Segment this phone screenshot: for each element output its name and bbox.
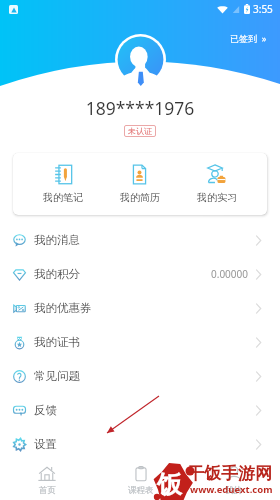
staticText: 我的积分 <box>34 267 80 281</box>
staticText: 189****1976 <box>0 96 280 120</box>
staticText: 课程表 <box>128 485 154 496</box>
button[interactable]: 反馈 <box>0 393 280 427</box>
button[interactable]: 我的消息 <box>0 223 280 257</box>
staticText: 饭 <box>157 469 182 500</box>
button[interactable]: 我的优惠券 <box>0 291 280 325</box>
button[interactable]: 常见问题 <box>0 359 280 393</box>
button[interactable]: 我的实习 <box>178 153 255 215</box>
button[interactable]: 未认证 <box>124 125 156 137</box>
staticText: 3:55 <box>253 2 273 16</box>
staticText: 常见问题 <box>34 369 80 383</box>
staticText: 未认证 <box>128 126 152 136</box>
button[interactable]: 我的证书 <box>0 325 280 359</box>
staticText: www.eduext.com <box>190 483 273 496</box>
staticText: 我的证书 <box>34 335 80 349</box>
staticText: 干饭手游网 <box>187 463 272 484</box>
button[interactable]: 已签到 » <box>228 30 269 46</box>
staticText: 设置 <box>34 437 57 451</box>
button[interactable]: 首页 <box>0 462 94 500</box>
staticText: 我的实习 <box>197 191 237 204</box>
button[interactable]: 我的笔记 <box>25 153 101 215</box>
staticText: 我的消息 <box>34 233 80 247</box>
button[interactable]: 我的简历 <box>101 153 178 215</box>
staticText: 我的简历 <box>120 191 160 204</box>
staticText: 反馈 <box>34 403 57 417</box>
button[interactable]: 我的积分 <box>0 257 280 291</box>
staticText: 0.00000 <box>211 267 248 281</box>
staticText: 我的优惠券 <box>34 301 92 315</box>
staticText: 我的笔记 <box>43 191 83 204</box>
button[interactable]: 我的 <box>187 462 280 500</box>
staticText: 首页 <box>39 485 56 496</box>
staticText: 已签到 » <box>230 32 267 44</box>
staticText: 我的 <box>225 485 242 496</box>
button[interactable]: 课程表 <box>94 462 187 500</box>
button[interactable]: 设置 <box>0 427 280 461</box>
button[interactable]: Profile avatar <box>115 34 166 85</box>
